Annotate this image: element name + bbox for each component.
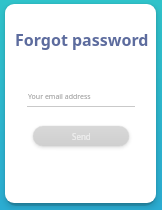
button[interactable]: Your email address [27, 92, 135, 107]
staticText: Forgot password [15, 29, 149, 51]
staticText: Your email address [28, 92, 91, 102]
staticText: Send [72, 131, 91, 142]
button[interactable]: Send [33, 126, 129, 146]
